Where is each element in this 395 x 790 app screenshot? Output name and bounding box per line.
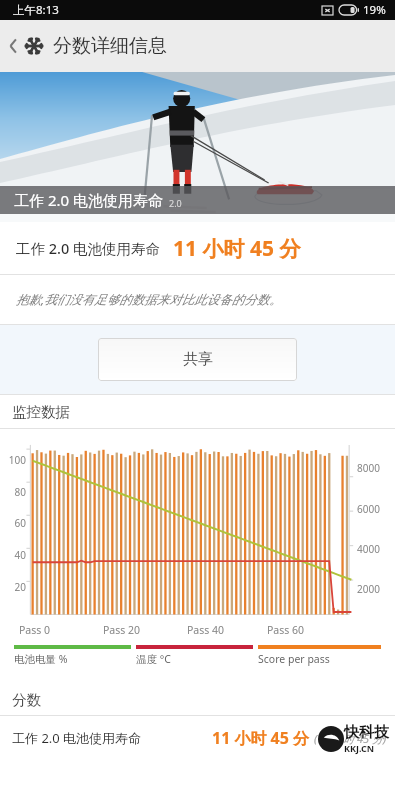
staticText: 监控数据 — [12, 403, 70, 421]
staticText: 上午8:13 — [13, 2, 59, 18]
staticText: 100 — [0, 453, 26, 467]
staticText: 60 — [0, 516, 26, 530]
button[interactable]: Score per pass — [258, 645, 381, 666]
staticText: 11 小时 45 分 — [173, 234, 301, 263]
other: Back — [6, 35, 22, 57]
staticText: KKJ.CN — [344, 742, 375, 754]
button[interactable]: 工作 2.0 电池使用寿命 — [0, 716, 395, 760]
staticText: 11 小时 45 分 — [212, 727, 310, 749]
button[interactable]: 电池电量 % — [14, 645, 136, 666]
staticText: 40 — [0, 548, 26, 562]
staticText: 工作 2.0 电池使用寿命 — [14, 190, 163, 210]
staticText: 分数 — [12, 691, 41, 709]
staticText: 6000 — [357, 502, 380, 516]
staticText: 20 — [0, 580, 26, 594]
staticText: 2.0 — [169, 197, 182, 209]
button[interactable]: 共享 — [98, 338, 297, 381]
button[interactable]: 温度 °C — [136, 645, 258, 666]
staticText: 电池电量 % — [14, 652, 68, 666]
staticText: 4000 — [357, 542, 380, 556]
staticText: 抱歉,我们没有足够的数据来对比此设备的分数。 — [16, 291, 282, 308]
staticText: 2000 — [357, 582, 380, 596]
staticText: Pass 40 — [187, 623, 225, 637]
button[interactable]: Back — [0, 20, 395, 72]
staticText: 19% — [363, 2, 386, 18]
staticText: 8000 — [357, 461, 380, 475]
staticText: 温度 °C — [136, 652, 171, 666]
staticText: 共享 — [183, 350, 213, 369]
staticText: Pass 0 — [19, 623, 51, 637]
staticText: Score per pass — [258, 652, 330, 666]
staticText: Pass 20 — [103, 623, 141, 637]
staticText: Pass 60 — [267, 623, 305, 637]
staticText: 分数详细信息 — [53, 34, 167, 58]
staticText: 快科技 — [344, 723, 389, 742]
staticText: 工作 2.0 电池使用寿命 — [12, 729, 142, 747]
staticText: 工作 2.0 电池使用寿命 — [16, 238, 161, 258]
staticText: (11 小时 45 分) — [314, 731, 387, 746]
staticText: 80 — [0, 485, 26, 499]
